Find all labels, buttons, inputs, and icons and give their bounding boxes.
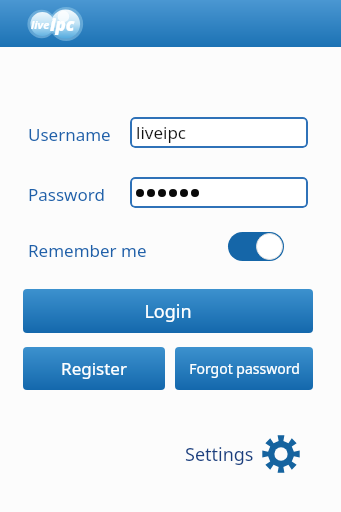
staticText: liveipc xyxy=(136,121,186,144)
staticText: Forgot password xyxy=(189,359,300,378)
staticText: Settings xyxy=(185,442,254,467)
button[interactable]: Remember me toggle xyxy=(228,232,284,261)
staticText: Register xyxy=(61,357,127,380)
staticText: Username xyxy=(28,123,111,146)
button[interactable]: Forgot password xyxy=(175,347,313,390)
staticText: Remember me xyxy=(28,239,147,262)
button[interactable]: Login xyxy=(23,289,313,333)
staticText: Password xyxy=(28,183,105,206)
button[interactable]: Username xyxy=(28,123,111,146)
staticText: live xyxy=(31,17,50,32)
button[interactable]: Password xyxy=(28,183,105,206)
staticText: ipc xyxy=(50,13,75,36)
button[interactable]: Settings xyxy=(185,432,300,476)
staticText: Login xyxy=(144,299,192,324)
button[interactable]: Register xyxy=(23,347,165,390)
button[interactable]: liveipc xyxy=(130,117,308,148)
button[interactable] xyxy=(130,177,308,208)
button[interactable]: Remember me xyxy=(28,239,147,262)
